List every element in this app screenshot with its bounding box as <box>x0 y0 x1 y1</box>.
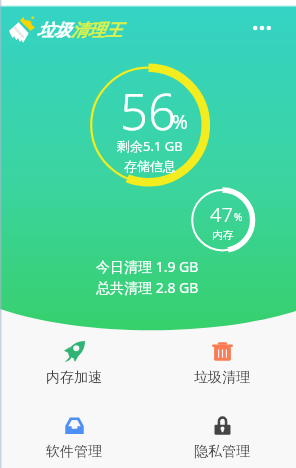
staticText: 今日清理 1.9 GB <box>96 257 199 276</box>
staticText: 存储信息 <box>124 158 176 174</box>
staticText: 垃圾清理 <box>194 369 250 387</box>
staticText: 隐私管理 <box>194 443 250 461</box>
staticText: 软件管理 <box>46 443 102 461</box>
button[interactable]: 内存加速 <box>37 341 111 387</box>
staticText: 内存加速 <box>46 369 102 387</box>
staticText: 47 <box>210 201 233 228</box>
button[interactable]: 隐私管理 <box>185 415 259 461</box>
staticText: 内存 <box>212 228 234 242</box>
staticText: % <box>172 109 188 135</box>
staticText: % <box>234 210 243 224</box>
staticText: 剩余5.1 GB <box>117 137 183 155</box>
staticText: 56 <box>120 78 176 145</box>
staticText: 垃圾清理王 <box>37 20 122 41</box>
button[interactable]: 垃圾清理 <box>185 341 259 387</box>
button[interactable]: 软件管理 <box>37 415 111 461</box>
staticText: 总共清理 2.8 GB <box>96 278 199 297</box>
button[interactable]: More options <box>240 6 284 50</box>
